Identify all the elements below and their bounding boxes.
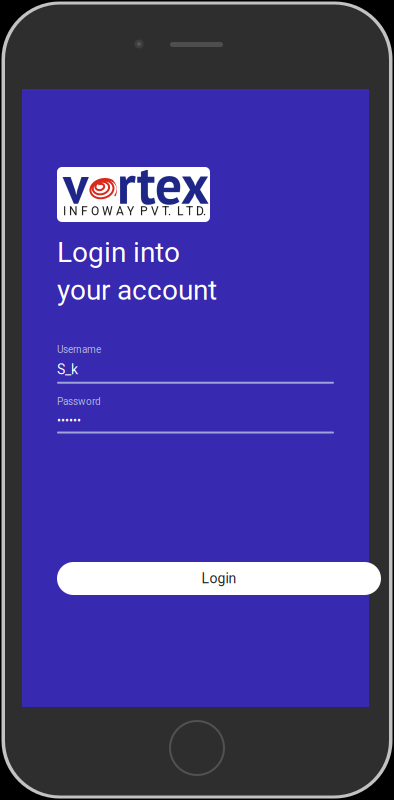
staticText: S_k — [57, 361, 78, 378]
staticText: your account — [57, 274, 217, 307]
button[interactable]: Login — [57, 562, 381, 595]
staticText: Login — [201, 570, 236, 587]
staticText: I N F O W A Y P V T. L T D. — [63, 204, 206, 218]
staticText: Username — [57, 344, 101, 355]
staticText: Login into — [57, 236, 180, 269]
staticText: Password — [57, 396, 101, 407]
staticText: rtex — [117, 149, 209, 218]
staticText: •••••• — [57, 413, 81, 428]
staticText: v — [63, 149, 88, 218]
